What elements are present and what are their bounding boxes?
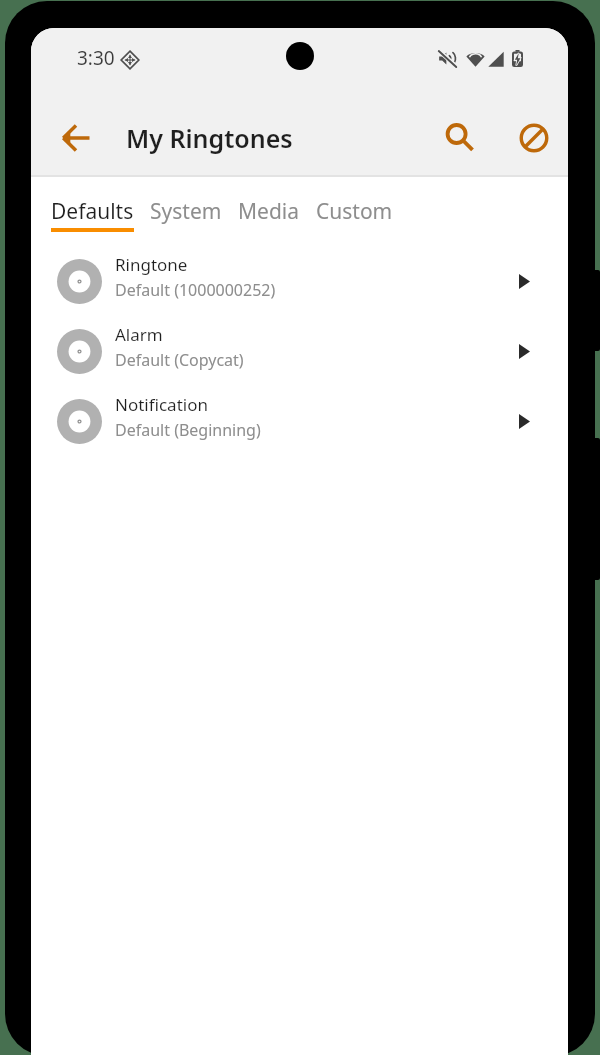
button[interactable]: Ringtone [31, 246, 568, 316]
staticText: Media [238, 197, 300, 226]
button[interactable]: Play [501, 328, 547, 374]
staticText: Default (Beginning) [115, 419, 261, 441]
button[interactable]: Alarm [31, 316, 568, 386]
staticText: Notification [115, 393, 208, 416]
button[interactable]: Back [52, 114, 100, 162]
button[interactable]: Defaults [43, 177, 142, 232]
staticText: Default (1000000252) [115, 279, 276, 301]
button[interactable]: Notification [31, 386, 568, 456]
button[interactable]: Custom [308, 177, 401, 232]
staticText: Custom [316, 197, 393, 226]
staticText: Alarm [115, 323, 163, 346]
button[interactable]: Play [501, 398, 547, 444]
button[interactable]: Media [230, 177, 308, 232]
staticText: Ringtone [115, 253, 188, 276]
button[interactable]: Do not disturb [510, 114, 558, 162]
staticText: System [150, 197, 222, 226]
staticText: Default (Copycat) [115, 349, 244, 371]
staticText: My Ringtones [126, 121, 293, 155]
button[interactable]: Search [435, 113, 483, 161]
staticText: 3:30 [77, 45, 115, 71]
button[interactable]: Play [501, 258, 547, 304]
staticText: Defaults [51, 197, 134, 226]
button[interactable]: System [142, 177, 230, 232]
